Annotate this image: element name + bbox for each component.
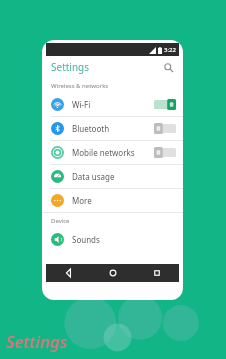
button[interactable]: More [42, 189, 183, 212]
staticText: Device [51, 217, 70, 225]
staticText: Settings [6, 330, 68, 353]
staticText: Data usage [72, 171, 115, 182]
staticText: 3:22 [164, 46, 176, 54]
button[interactable]: Sounds [42, 228, 183, 251]
staticText: Settings [51, 60, 90, 74]
button[interactable]: Recents [135, 264, 179, 282]
button[interactable]: Bluetooth [42, 117, 183, 140]
button[interactable]: Toggle on [154, 99, 176, 110]
button[interactable]: Back [46, 264, 91, 282]
staticText: Sounds [72, 234, 100, 245]
button[interactable]: Toggle off [154, 123, 176, 134]
staticText: Wi-Fi [72, 99, 91, 110]
button[interactable]: Search [161, 60, 175, 74]
button[interactable]: Data usage [42, 165, 183, 188]
button[interactable]: Wi-Fi [42, 93, 183, 116]
staticText: Mobile networks [72, 147, 135, 158]
staticText: Bluetooth [72, 123, 110, 134]
staticText: More [72, 195, 92, 206]
button[interactable]: Home [91, 264, 135, 282]
staticText: Wireless & networks [51, 82, 109, 90]
button[interactable]: Toggle off [154, 147, 176, 158]
button[interactable]: Mobile networks [42, 141, 183, 164]
